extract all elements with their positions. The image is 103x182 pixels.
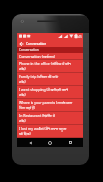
staticText: Where is your parents (आपके माता	[19, 100, 73, 105]
button[interactable]: Navigate up	[17, 40, 83, 47]
button[interactable]: I went shopping (मैं खरीदारी करने	[17, 86, 83, 98]
staticText: Phone in the office (ऑफ़िस में फ़ोन	[19, 61, 71, 66]
staticText: Conversation	[26, 42, 47, 46]
button[interactable]: I lost my wallet (मैंने अपना बटुआ	[17, 125, 83, 137]
staticText: शब्द)	[19, 66, 26, 71]
staticText: 12:45	[74, 35, 82, 39]
staticText: In Restaurant (रेस्टोरेंट में	[19, 113, 55, 118]
staticText: शब्द)	[19, 92, 26, 97]
button[interactable]: In Restaurant (रेस्टोरेंट में	[17, 112, 83, 124]
button[interactable]: Back	[23, 138, 37, 147]
button[interactable]: Home	[43, 138, 57, 147]
button[interactable]: Navigate up	[17, 40, 26, 47]
staticText: शब्द)	[19, 79, 26, 84]
staticText: Family trip (परिवार की यात्रा	[19, 74, 59, 79]
button[interactable]: Conversation	[17, 47, 83, 53]
staticText: Conversation (वार्तालाप)	[19, 54, 55, 59]
button[interactable]: Recent apps	[63, 138, 77, 147]
staticText: पिता कहाँ हैं)	[19, 105, 35, 110]
staticText: I went shopping (मैं खरीदारी करने	[19, 87, 68, 92]
button[interactable]: Where is your parents (आपके माता	[17, 99, 83, 111]
button[interactable]: Phone in the office (ऑफ़िस में फ़ोन	[17, 60, 83, 72]
staticText: खो दिया)	[19, 131, 31, 136]
staticText: शब्द)	[19, 118, 26, 123]
staticText: I lost my wallet (मैंने अपना बटुआ	[19, 126, 67, 131]
staticText: Conversation	[19, 48, 39, 52]
button[interactable]: Conversation (वार्तालाप)	[17, 53, 83, 59]
button[interactable]: Family trip (परिवार की यात्रा	[17, 73, 83, 85]
